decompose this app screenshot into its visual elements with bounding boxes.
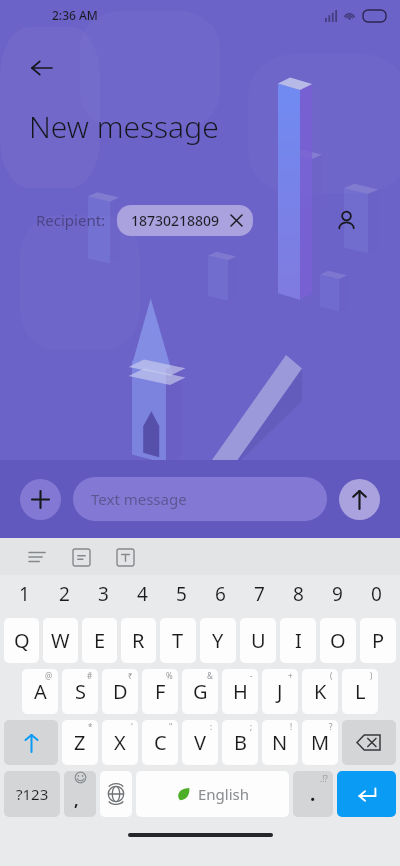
button[interactable]: 4 <box>123 575 162 613</box>
staticText: Recipient: <box>36 210 106 230</box>
button[interactable]: N <box>262 720 298 765</box>
button[interactable]: O <box>320 618 356 663</box>
staticText: 18730218809 <box>131 211 220 230</box>
staticText: W <box>51 627 70 654</box>
staticText: T <box>172 627 184 654</box>
button[interactable]: K <box>302 669 338 714</box>
staticText: V <box>194 729 206 756</box>
button[interactable]: Text message <box>73 477 327 521</box>
button[interactable]: G <box>182 669 218 714</box>
staticText: S <box>75 678 86 705</box>
staticText: " <box>169 721 173 732</box>
button[interactable]: L <box>342 669 378 714</box>
staticText: 3 <box>98 581 109 607</box>
button[interactable]: Back <box>22 48 62 88</box>
button[interactable]: Enter <box>337 771 396 817</box>
button[interactable]: 7 <box>240 575 279 613</box>
staticText: ( <box>330 670 333 681</box>
button[interactable]: Z <box>62 720 98 765</box>
button[interactable]: Period <box>293 771 333 817</box>
button[interactable]: 18730218809 <box>117 205 253 236</box>
staticText: N <box>272 729 288 756</box>
button[interactable]: Menu <box>22 542 52 572</box>
staticText: U <box>251 627 266 654</box>
button[interactable]: F <box>142 669 178 714</box>
button[interactable]: R <box>121 618 156 663</box>
staticText: A <box>34 678 47 705</box>
button[interactable]: Y <box>200 618 236 663</box>
staticText: D <box>113 678 128 705</box>
button[interactable]: 1 <box>4 575 44 613</box>
staticText: New message <box>29 106 219 147</box>
button[interactable]: S <box>62 669 98 714</box>
button[interactable]: 8 <box>279 575 318 613</box>
button[interactable]: D <box>102 669 138 714</box>
button[interactable]: A <box>22 669 58 714</box>
button[interactable]: I <box>280 618 316 663</box>
button[interactable]: 5 <box>162 575 201 613</box>
staticText: English <box>198 784 250 804</box>
staticText: Text message <box>91 489 187 509</box>
button[interactable]: W <box>43 618 78 663</box>
button[interactable]: Backspace <box>342 720 396 765</box>
button[interactable]: J <box>262 669 298 714</box>
button[interactable]: 3 <box>84 575 123 613</box>
staticText: 2:36 AM <box>52 7 98 23</box>
staticText: M <box>311 729 330 756</box>
button[interactable]: U <box>240 618 276 663</box>
staticText: & <box>207 670 213 681</box>
button[interactable]: 2 <box>44 575 84 613</box>
staticText: 5 <box>176 581 187 607</box>
button[interactable]: Clipboard <box>66 542 96 572</box>
staticText: , <box>74 789 79 811</box>
button[interactable]: E <box>82 618 117 663</box>
staticText: ?123 <box>16 784 49 804</box>
button[interactable]: ?123 <box>4 771 60 817</box>
staticText: ? <box>329 721 333 732</box>
staticText: I <box>295 627 302 654</box>
button[interactable]: Emoji and comma <box>64 771 96 817</box>
staticText: C <box>154 729 167 756</box>
button[interactable]: Shift <box>4 720 58 765</box>
staticText: + <box>288 670 293 681</box>
button[interactable]: T <box>160 618 196 663</box>
staticText: O <box>330 627 346 654</box>
button[interactable]: Text settings <box>110 542 140 572</box>
staticText: J <box>277 678 283 705</box>
button[interactable]: English <box>136 771 289 817</box>
staticText: P <box>372 627 385 654</box>
staticText: B <box>234 729 247 756</box>
button[interactable]: X <box>102 720 138 765</box>
button[interactable]: 0 <box>357 575 396 613</box>
button[interactable]: Add attachment <box>20 479 61 520</box>
staticText: 8 <box>293 581 304 607</box>
button[interactable]: P <box>360 618 396 663</box>
staticText: K <box>314 678 327 705</box>
staticText: Q <box>14 627 30 654</box>
staticText: - <box>250 670 253 681</box>
button[interactable]: V <box>182 720 218 765</box>
button[interactable]: H <box>222 669 258 714</box>
staticText: 6 <box>215 581 226 607</box>
staticText: : <box>210 721 213 732</box>
button[interactable]: M <box>302 720 338 765</box>
button[interactable]: Send <box>339 479 380 520</box>
staticText: . <box>310 781 316 807</box>
staticText: @ <box>45 670 53 681</box>
staticText: R <box>132 627 145 654</box>
staticText: ; <box>250 721 253 732</box>
staticText: ' <box>131 721 133 732</box>
button[interactable]: C <box>142 720 178 765</box>
button[interactable]: Q <box>4 618 39 663</box>
button[interactable]: Contacts <box>328 202 364 238</box>
button[interactable]: 6 <box>201 575 240 613</box>
staticText: Z <box>74 729 86 756</box>
staticText: ) <box>370 670 373 681</box>
staticText: 2 <box>59 581 70 607</box>
button[interactable]: 9 <box>318 575 357 613</box>
staticText: .!? <box>320 773 328 784</box>
staticText: 7 <box>254 581 265 607</box>
staticText: 0 <box>371 581 382 607</box>
button[interactable]: Change language <box>100 771 132 817</box>
button[interactable]: B <box>222 720 258 765</box>
